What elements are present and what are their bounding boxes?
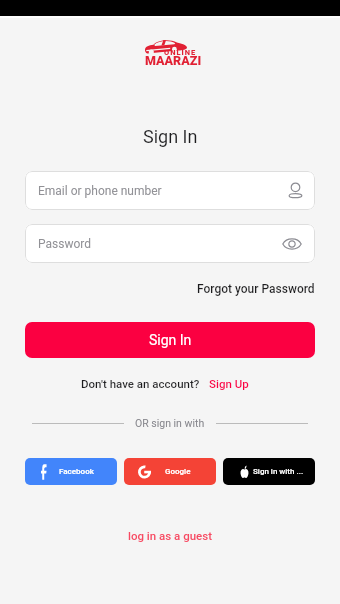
staticText: Google	[165, 467, 191, 476]
button[interactable]: Sign Up	[209, 377, 249, 390]
button[interactable]: Email or phone number	[25, 171, 315, 210]
staticText: Sign In	[149, 332, 192, 348]
staticText: Don't have an account?	[81, 377, 200, 390]
button[interactable]: Password	[25, 224, 315, 263]
other: Account	[289, 183, 302, 199]
other: Online Maarazi	[144, 36, 214, 72]
staticText: Forgot your Password	[197, 282, 315, 296]
staticText: Email or phone number	[38, 184, 162, 198]
staticText: ONLINE	[164, 48, 197, 57]
staticText: Sign Up	[209, 377, 249, 390]
staticText: Sign In	[143, 126, 198, 147]
button[interactable]: log in as a guest	[128, 529, 213, 542]
button[interactable]: Sign in with Google	[124, 458, 216, 485]
staticText: OR sign in with	[135, 417, 205, 429]
button[interactable]: Sign In	[25, 322, 315, 358]
button[interactable]: Sign in with Apple	[223, 458, 315, 485]
other: Show password	[282, 237, 302, 251]
staticText: Sign in with ...	[253, 467, 304, 476]
staticText: MAARAZI	[145, 53, 202, 68]
staticText: Facebook	[59, 467, 94, 476]
staticText: Password	[38, 237, 92, 251]
button[interactable]: Sign in with Facebook	[25, 458, 117, 485]
button[interactable]: Forgot your Password	[197, 282, 315, 296]
staticText: log in as a guest	[128, 529, 213, 542]
